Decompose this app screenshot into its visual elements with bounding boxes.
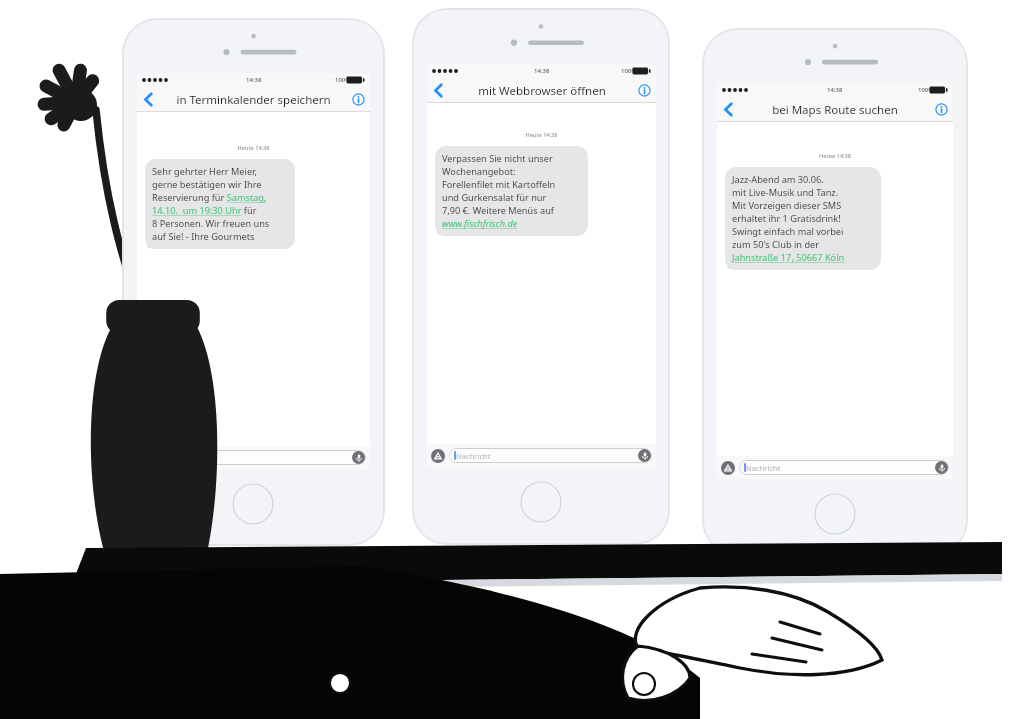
staticText: 14:38 bbox=[827, 86, 843, 94]
button[interactable]: Back bbox=[717, 97, 739, 122]
button[interactable]: Dictate bbox=[638, 449, 651, 462]
button[interactable]: App Store bbox=[431, 449, 445, 463]
staticText: Verpassen Sie nicht unser bbox=[442, 152, 553, 165]
staticText: Wochenangebot: bbox=[442, 165, 516, 178]
staticText: Jahnstraße 17, 50667 Köln bbox=[732, 251, 845, 264]
staticText: 14:38 bbox=[246, 76, 262, 84]
staticText: Reservierung für Samstag, bbox=[152, 191, 267, 204]
button[interactable]: Nachricht bbox=[739, 460, 949, 475]
staticText: 14.10. um 19:30 Uhr für bbox=[152, 204, 257, 217]
staticText: www.fischfrisch.de bbox=[442, 217, 518, 230]
staticText: 100% bbox=[335, 76, 351, 84]
staticText: 100% bbox=[621, 67, 637, 75]
button[interactable]: Dictate bbox=[352, 451, 365, 464]
staticText: Nachricht bbox=[746, 463, 781, 473]
staticText: erhaltet ihr 1 Gratisdrink! bbox=[732, 212, 841, 225]
staticText: und Gurkensalat für nur bbox=[442, 191, 547, 204]
button[interactable]: Dictate bbox=[935, 461, 948, 474]
staticText: gerne bestätigen wir Ihre bbox=[152, 178, 262, 191]
staticText: 7,90 €. Weitere Menüs auf bbox=[442, 204, 554, 217]
staticText: bei Maps Route suchen bbox=[772, 102, 898, 118]
button[interactable]: App Store bbox=[721, 461, 735, 475]
staticText: auf Sie! - Ihre Gourmets bbox=[152, 230, 255, 243]
staticText: mit Webbrowser öffnen bbox=[478, 83, 606, 99]
staticText: 8 Personen. Wir freuen uns bbox=[152, 217, 270, 230]
staticText: 100% bbox=[918, 86, 934, 94]
staticText: Heute 14:38 bbox=[137, 144, 370, 152]
button[interactable]: Nachricht bbox=[449, 448, 652, 463]
staticText: Forellenfilet mit Kartoffeln bbox=[442, 178, 556, 191]
staticText: Swingt einfach mal vorbei bbox=[732, 225, 844, 238]
staticText: Heute 14:38 bbox=[427, 131, 656, 139]
button[interactable]: Back bbox=[427, 78, 449, 103]
staticText: Jazz-Abend am 30.06. bbox=[732, 173, 824, 186]
button[interactable]: Nachricht bbox=[159, 450, 366, 465]
staticText: Nachricht bbox=[456, 451, 491, 461]
button[interactable]: Details bbox=[632, 78, 656, 103]
staticText: Mit Vorzeigen dieser SMS bbox=[732, 199, 842, 212]
staticText: mit Live-Musik und Tanz. bbox=[732, 186, 839, 199]
staticText: Sehr gehrter Herr Meier, bbox=[152, 165, 257, 178]
staticText: in Terminkalender speichern bbox=[176, 92, 331, 108]
button[interactable]: Back bbox=[137, 87, 159, 112]
button[interactable]: Details bbox=[929, 97, 953, 122]
staticText: 14:38 bbox=[534, 67, 550, 75]
button[interactable]: Details bbox=[346, 87, 370, 112]
staticText: Heute 14:38 bbox=[717, 152, 953, 160]
staticText: zum 50's Club in der bbox=[732, 238, 820, 251]
